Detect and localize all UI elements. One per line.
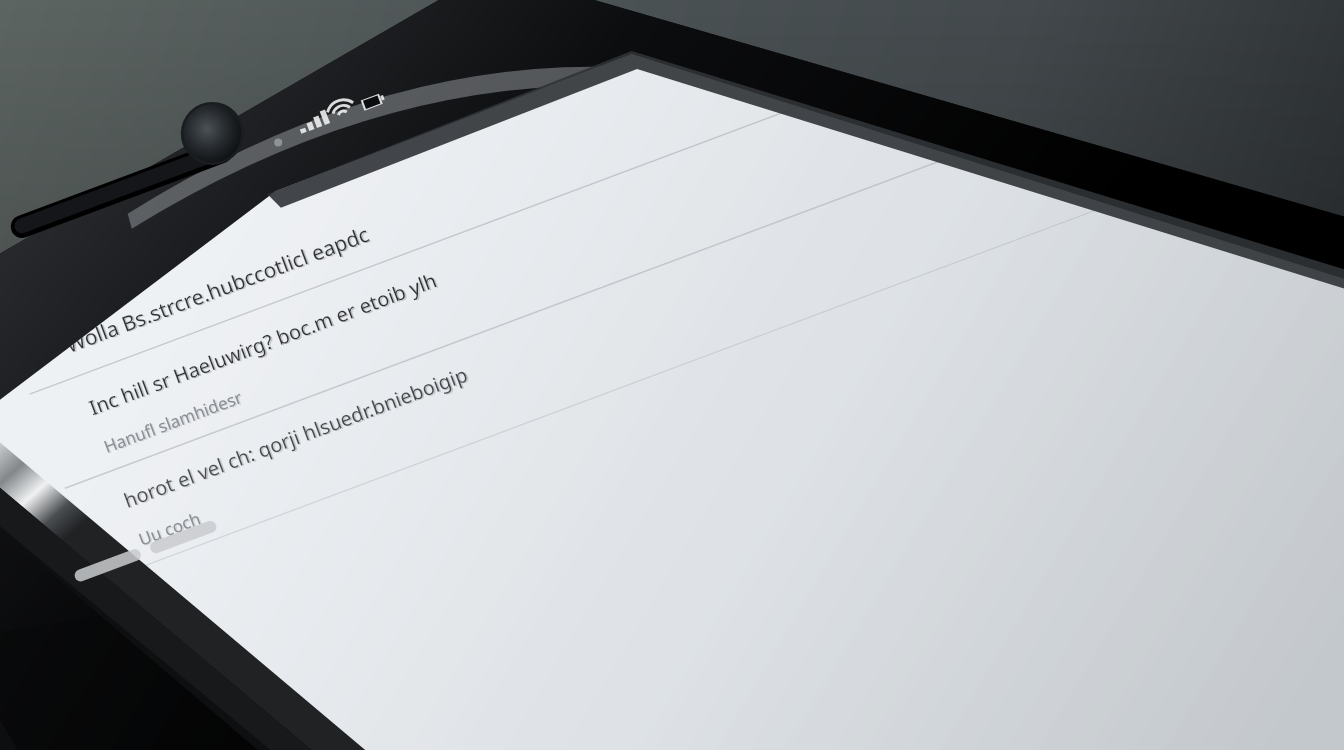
- button[interactable]: Phone displaying a list screen: [0, 0, 1344, 750]
